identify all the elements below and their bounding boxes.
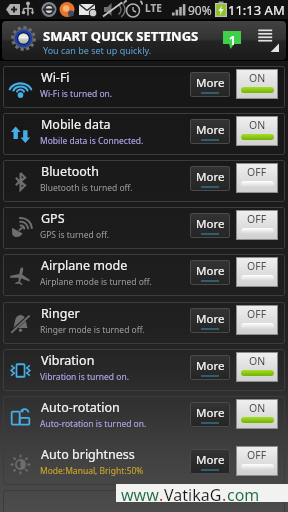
button[interactable]: More — [190, 213, 230, 238]
staticText: Auto-rotation — [41, 399, 120, 416]
staticText: Airplane mode — [41, 257, 128, 274]
staticText: Auto-rotation is turned on. — [40, 418, 147, 430]
staticText: Mobile data is Connected. — [40, 135, 144, 147]
button[interactable]: GPS — [3, 207, 285, 249]
staticText: OFF — [247, 448, 267, 462]
button[interactable]: More — [190, 166, 230, 191]
button[interactable]: Wi-Fi — [3, 66, 285, 108]
staticText: More — [196, 122, 225, 138]
staticText: Mobile data — [41, 116, 111, 133]
staticText: SMART QUICK SETTINGS — [43, 27, 199, 45]
staticText: VatikaG — [164, 484, 222, 502]
button[interactable]: OFF — [236, 163, 278, 193]
staticText: ON — [249, 71, 266, 85]
staticText: 11:13 AM — [228, 1, 285, 19]
button[interactable]: OFF — [236, 305, 278, 335]
button[interactable]: More — [190, 449, 230, 474]
button[interactable]: ON — [236, 352, 278, 382]
staticText: ON — [249, 118, 266, 132]
button[interactable]: Auto-rotation — [3, 396, 285, 438]
staticText: LTE — [145, 1, 162, 15]
button[interactable]: OFF — [236, 446, 278, 476]
button[interactable]: More — [190, 119, 230, 144]
staticText: Ringer mode is turned off. — [40, 324, 145, 336]
button[interactable]: Mobile data — [3, 113, 285, 155]
staticText: . — [159, 484, 164, 502]
button[interactable]: OFF — [236, 257, 278, 287]
button[interactable]: More — [190, 402, 230, 427]
staticText: Mode:Manual, Bright:50% — [40, 465, 144, 477]
staticText: ON — [249, 354, 266, 368]
staticText: com — [227, 484, 260, 502]
staticText: OFF — [247, 212, 267, 226]
staticText: ON — [249, 401, 266, 415]
staticText: Ringer — [41, 305, 80, 322]
staticText: Wi-Fi is turned on. — [40, 88, 113, 100]
staticText: More — [196, 405, 225, 421]
staticText: More — [196, 169, 225, 185]
staticText: Wi-Fi — [41, 69, 70, 86]
staticText: More — [196, 452, 225, 468]
button[interactable]: ON — [236, 399, 278, 429]
button[interactable]: ON — [236, 116, 278, 146]
staticText: 1 — [229, 32, 236, 48]
button[interactable]: More — [190, 308, 230, 333]
staticText: Airplane mode is turned off. — [40, 276, 152, 288]
staticText: GPS is turned off. — [40, 229, 110, 241]
staticText: OFF — [247, 259, 267, 273]
staticText: www — [121, 484, 159, 502]
button[interactable]: More — [190, 260, 230, 285]
staticText: More — [196, 75, 225, 91]
button[interactable]: Menu — [252, 25, 282, 55]
button[interactable]: OFF — [236, 210, 278, 240]
staticText: You can be set up quickly. — [43, 44, 152, 56]
staticText: Bluetooth — [41, 163, 100, 180]
staticText: Vibration — [41, 352, 95, 369]
button[interactable]: Airplane mode — [3, 254, 285, 296]
button[interactable]: Bluetooth — [3, 160, 285, 202]
staticText: More — [196, 216, 225, 232]
staticText: More — [196, 358, 225, 374]
staticText: GPS — [41, 210, 65, 227]
button[interactable]: ON — [236, 69, 278, 99]
staticText: OFF — [247, 165, 267, 179]
button[interactable]: More — [190, 72, 230, 97]
button[interactable]: Ringer — [3, 302, 285, 344]
staticText: OFF — [247, 307, 267, 321]
button[interactable]: Notifications: 1 — [223, 31, 241, 49]
button[interactable]: Vibration — [3, 349, 285, 391]
staticText: Auto brightness — [41, 446, 135, 463]
staticText: More — [196, 311, 225, 327]
staticText: Bluetooth is turned off. — [40, 182, 133, 194]
button[interactable]: Auto brightness — [3, 443, 285, 485]
staticText: More — [196, 263, 225, 279]
staticText: 90% — [188, 2, 212, 18]
staticText: . — [222, 484, 227, 502]
staticText: Vibration is turned on. — [40, 371, 129, 383]
button[interactable]: More — [190, 355, 230, 380]
